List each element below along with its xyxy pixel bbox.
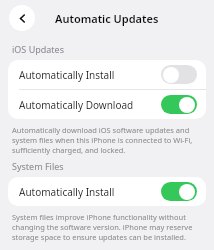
staticText: Automatically Install (19, 68, 115, 82)
button[interactable]: On (161, 95, 197, 114)
button[interactable]: Automatically Download (8, 90, 206, 119)
button[interactable]: On (161, 182, 197, 201)
button[interactable]: Automatically Install (8, 60, 206, 89)
button[interactable]: Off (161, 65, 197, 84)
button[interactable]: Automatically Install (8, 177, 206, 206)
button[interactable]: Back (9, 5, 35, 31)
staticText: Automatically Install (19, 185, 115, 199)
staticText: Automatic Updates (55, 11, 159, 26)
staticText: Automatically download iOS software upda… (12, 125, 200, 155)
staticText: iOS Updates (12, 43, 64, 55)
staticText: System Files (12, 160, 64, 172)
staticText: Automatically Download (19, 98, 134, 112)
staticText: System files improve iPhone functionalit… (12, 212, 200, 242)
